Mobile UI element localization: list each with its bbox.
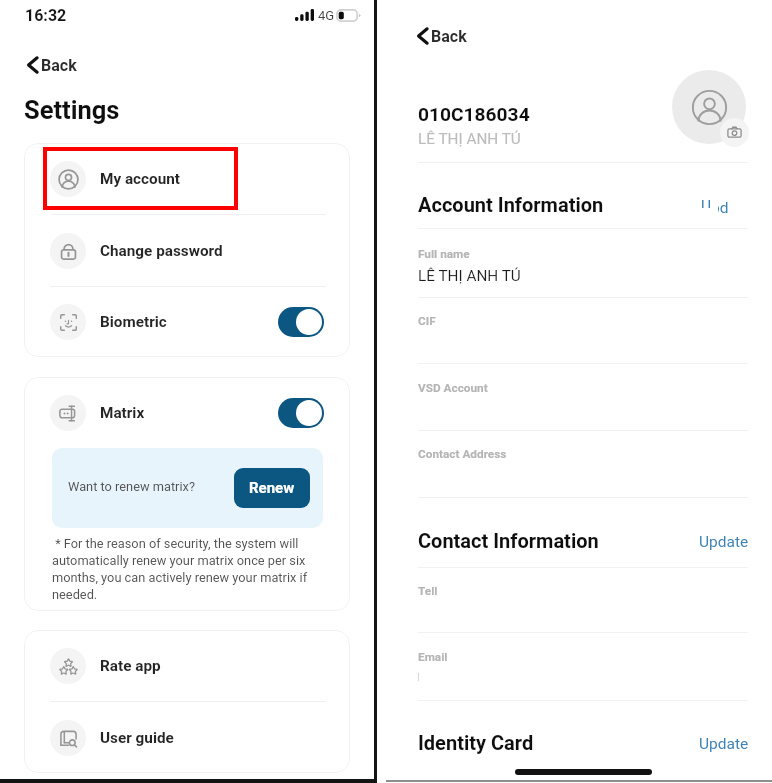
button[interactable]: Toggle Matrix [278,398,324,428]
button[interactable]: Matrix [24,377,350,448]
staticText: Update [699,533,749,551]
staticText: Change password [100,242,223,260]
staticText: Renew [249,479,295,497]
button[interactable]: Back [417,26,467,46]
staticText: Full name [418,247,470,261]
staticText: Contact Address [418,447,507,461]
staticText: Update [701,197,718,208]
staticText: Rate app [100,657,161,675]
staticText: User guide [100,729,174,747]
button[interactable]: Back [27,55,77,75]
staticText: Contact Information [418,529,599,552]
staticText: Tell [418,584,438,598]
staticText: Back [41,56,77,75]
staticText: Want to renew matrix? [68,479,195,494]
button[interactable]: Rate app [24,630,350,701]
staticText: * For the reason of security, the system… [52,536,324,602]
button[interactable]: Renew [234,468,310,508]
button[interactable]: Toggle Biometric [278,307,324,337]
staticText: CIF [418,314,436,328]
staticText: Biometric [100,313,167,331]
staticText: Matrix [100,404,145,422]
button[interactable]: Update [699,533,749,551]
button[interactable]: My account [24,143,350,214]
button[interactable]: Profile photo [672,70,746,144]
staticText: 4G [318,8,335,23]
staticText: Back [431,27,467,46]
staticText: 16:32 [25,6,67,25]
staticText: My account [100,170,181,188]
staticText: Email [418,650,448,664]
staticText: Identity Card [418,731,534,754]
button[interactable]: Biometric [24,287,350,357]
button[interactable]: Change password [24,215,350,286]
staticText: Update [718,199,732,217]
button[interactable]: Update [699,735,749,753]
staticText: LÊ THỊ ANH TÚ [418,267,521,285]
staticText: Update [699,735,749,753]
staticText: LÊ THỊ ANH TÚ [418,130,521,148]
staticText: Account Information [418,193,604,216]
button[interactable]: User guide [24,702,350,773]
staticText: VSD Account [418,381,488,395]
staticText: Settings [24,95,120,125]
staticText: 010C186034 [418,103,530,126]
button[interactable]: Update [701,197,749,217]
button[interactable]: Change photo [720,118,749,147]
